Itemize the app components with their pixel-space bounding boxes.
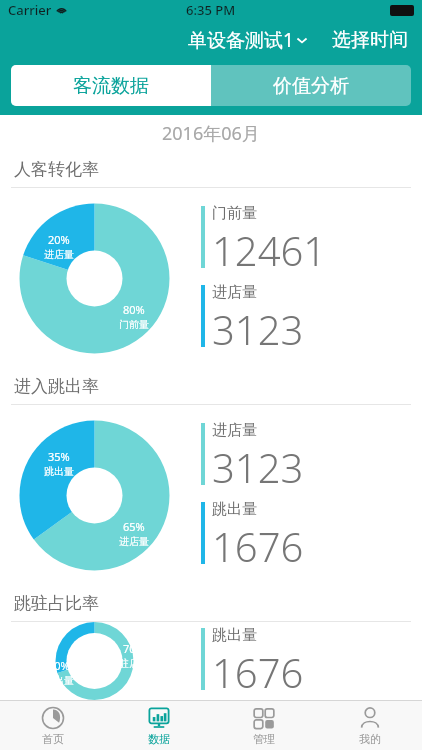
staticText: 数据 xyxy=(148,732,170,746)
staticText: 门前量 xyxy=(212,204,257,223)
staticText: 进店量 xyxy=(44,248,74,261)
staticText: 进店量 xyxy=(119,535,149,548)
button[interactable]: 数据 xyxy=(106,701,211,750)
staticText: 35% xyxy=(48,449,70,464)
staticText: 选择时间 xyxy=(332,28,408,52)
staticText: 12461 xyxy=(212,223,327,277)
staticText: 3123 xyxy=(212,302,304,356)
staticText: 跳出量 xyxy=(212,626,257,645)
staticText: 65% xyxy=(123,519,145,534)
button[interactable]: 管理 xyxy=(211,701,316,750)
staticText: 门前量 xyxy=(119,318,149,331)
staticText: 80% xyxy=(123,302,145,317)
staticText: 进入跳出率 xyxy=(14,376,99,397)
staticText: 跳出量 xyxy=(44,674,74,687)
staticText: 6:35 PM xyxy=(186,1,236,19)
staticText: 1676 xyxy=(212,645,304,699)
staticText: 客流数据 xyxy=(73,74,149,98)
staticText: 单设备测试1 xyxy=(188,27,294,53)
staticText: 跳出量 xyxy=(44,465,74,478)
staticText: 1676 xyxy=(212,519,304,573)
staticText: 人客转化率 xyxy=(14,159,99,180)
staticText: 3123 xyxy=(212,440,304,494)
staticText: 驻店量 xyxy=(119,657,149,670)
staticText: 跳出量 xyxy=(212,500,257,519)
staticText: 20% xyxy=(48,232,70,247)
staticText: 价值分析 xyxy=(273,74,349,98)
staticText: 跳驻占比率 xyxy=(14,593,99,614)
button[interactable]: 首页 xyxy=(0,701,105,750)
staticText: 首页 xyxy=(42,732,64,746)
staticText: 进店量 xyxy=(212,421,257,440)
staticText: Carrier xyxy=(8,1,52,19)
staticText: 70% xyxy=(123,641,145,656)
staticText: 我的 xyxy=(359,732,381,746)
button[interactable]: 价值分析 xyxy=(211,65,411,106)
staticText: 2016年06月 xyxy=(162,121,260,146)
button[interactable]: 单设备测试1 xyxy=(188,27,308,53)
button[interactable]: 客流数据 xyxy=(11,65,211,106)
staticText: 进店量 xyxy=(212,283,257,302)
staticText: 管理 xyxy=(253,732,275,746)
button[interactable]: 我的 xyxy=(317,701,422,750)
button[interactable]: 选择时间 xyxy=(332,28,422,52)
staticText: 30% xyxy=(48,658,70,673)
